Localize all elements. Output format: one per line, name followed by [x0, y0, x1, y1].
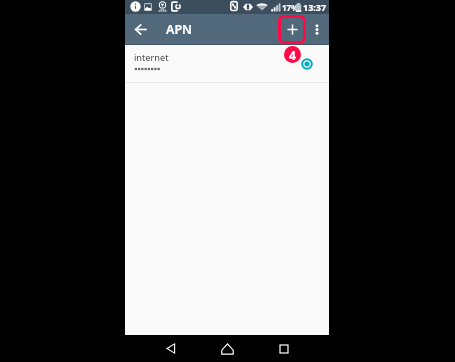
button[interactable]: Navigate up: [129, 14, 153, 45]
button[interactable]: Back: [156, 335, 185, 362]
staticText: internet: [134, 51, 169, 64]
button[interactable]: Home: [212, 335, 242, 362]
staticText: APN: [166, 21, 193, 38]
button[interactable]: More options: [307, 14, 326, 45]
staticText: 17%: [282, 2, 299, 13]
button[interactable]: internet: [125, 45, 329, 82]
button[interactable]: Add APN: [280, 14, 305, 45]
staticText: 13:37: [303, 1, 327, 13]
button[interactable]: Recent apps: [269, 335, 299, 362]
staticText: 4: [289, 47, 296, 63]
